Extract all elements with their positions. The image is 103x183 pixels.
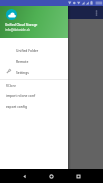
button[interactable]: Unified Folder — [0, 44, 68, 55]
staticText: Settings — [16, 70, 29, 74]
button[interactable]: Recent apps — [71, 169, 85, 183]
button[interactable]: export config — [0, 100, 68, 111]
staticText: import rclone conf — [6, 93, 36, 97]
button[interactable]: Back — [17, 169, 31, 183]
staticText: export config — [6, 104, 27, 108]
button[interactable]: More options — [91, 7, 102, 18]
button[interactable]: Settings — [0, 66, 68, 77]
staticText: RClone — [6, 84, 17, 88]
staticText: info@dataside.sk — [5, 28, 30, 32]
button[interactable]: Remote — [0, 55, 68, 66]
staticText: Unified Cloud Storage — [5, 23, 38, 27]
staticText: Remote — [16, 59, 29, 63]
button[interactable]: Home — [44, 169, 58, 183]
staticText: Unified Folder — [16, 48, 39, 52]
button[interactable]: import rclone conf — [0, 89, 68, 100]
